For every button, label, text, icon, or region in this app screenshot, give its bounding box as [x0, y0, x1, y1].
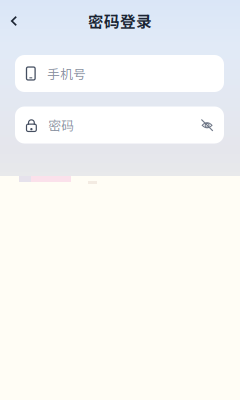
staticText: 手机号 [47, 64, 86, 83]
staticText: 密码 [48, 116, 74, 134]
button[interactable]: 手机号 [15, 55, 224, 92]
button[interactable]: Show password [201, 119, 213, 131]
button[interactable]: 密码 [15, 106, 224, 143]
button[interactable]: Back [0, 7, 28, 35]
staticText: 密码登录 [88, 10, 152, 32]
